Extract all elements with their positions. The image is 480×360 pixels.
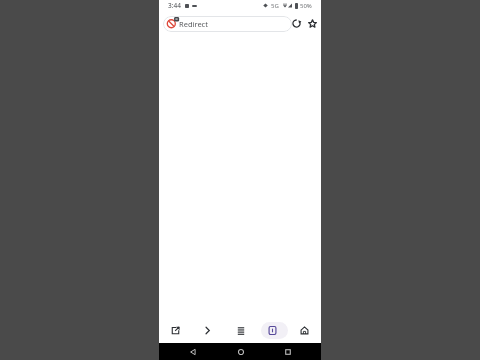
button[interactable]: Bookmark (305, 16, 320, 31)
button[interactable]: Reload (289, 16, 304, 31)
button[interactable]: Menu (227, 322, 254, 339)
button[interactable]: Tabs (259, 322, 286, 339)
staticText: 3:44 (168, 1, 181, 10)
button[interactable]: Forward (194, 322, 221, 339)
button[interactable]: Home (291, 322, 318, 339)
button[interactable]: Recents (281, 345, 295, 359)
button[interactable]: Back (186, 345, 200, 359)
button[interactable]: Share (162, 322, 189, 339)
staticText: Redirect (179, 19, 208, 29)
button[interactable]: Home (234, 345, 248, 359)
staticText: 5G (271, 2, 279, 10)
staticText: 50% (300, 2, 312, 10)
button[interactable]: Redirect (163, 16, 292, 32)
